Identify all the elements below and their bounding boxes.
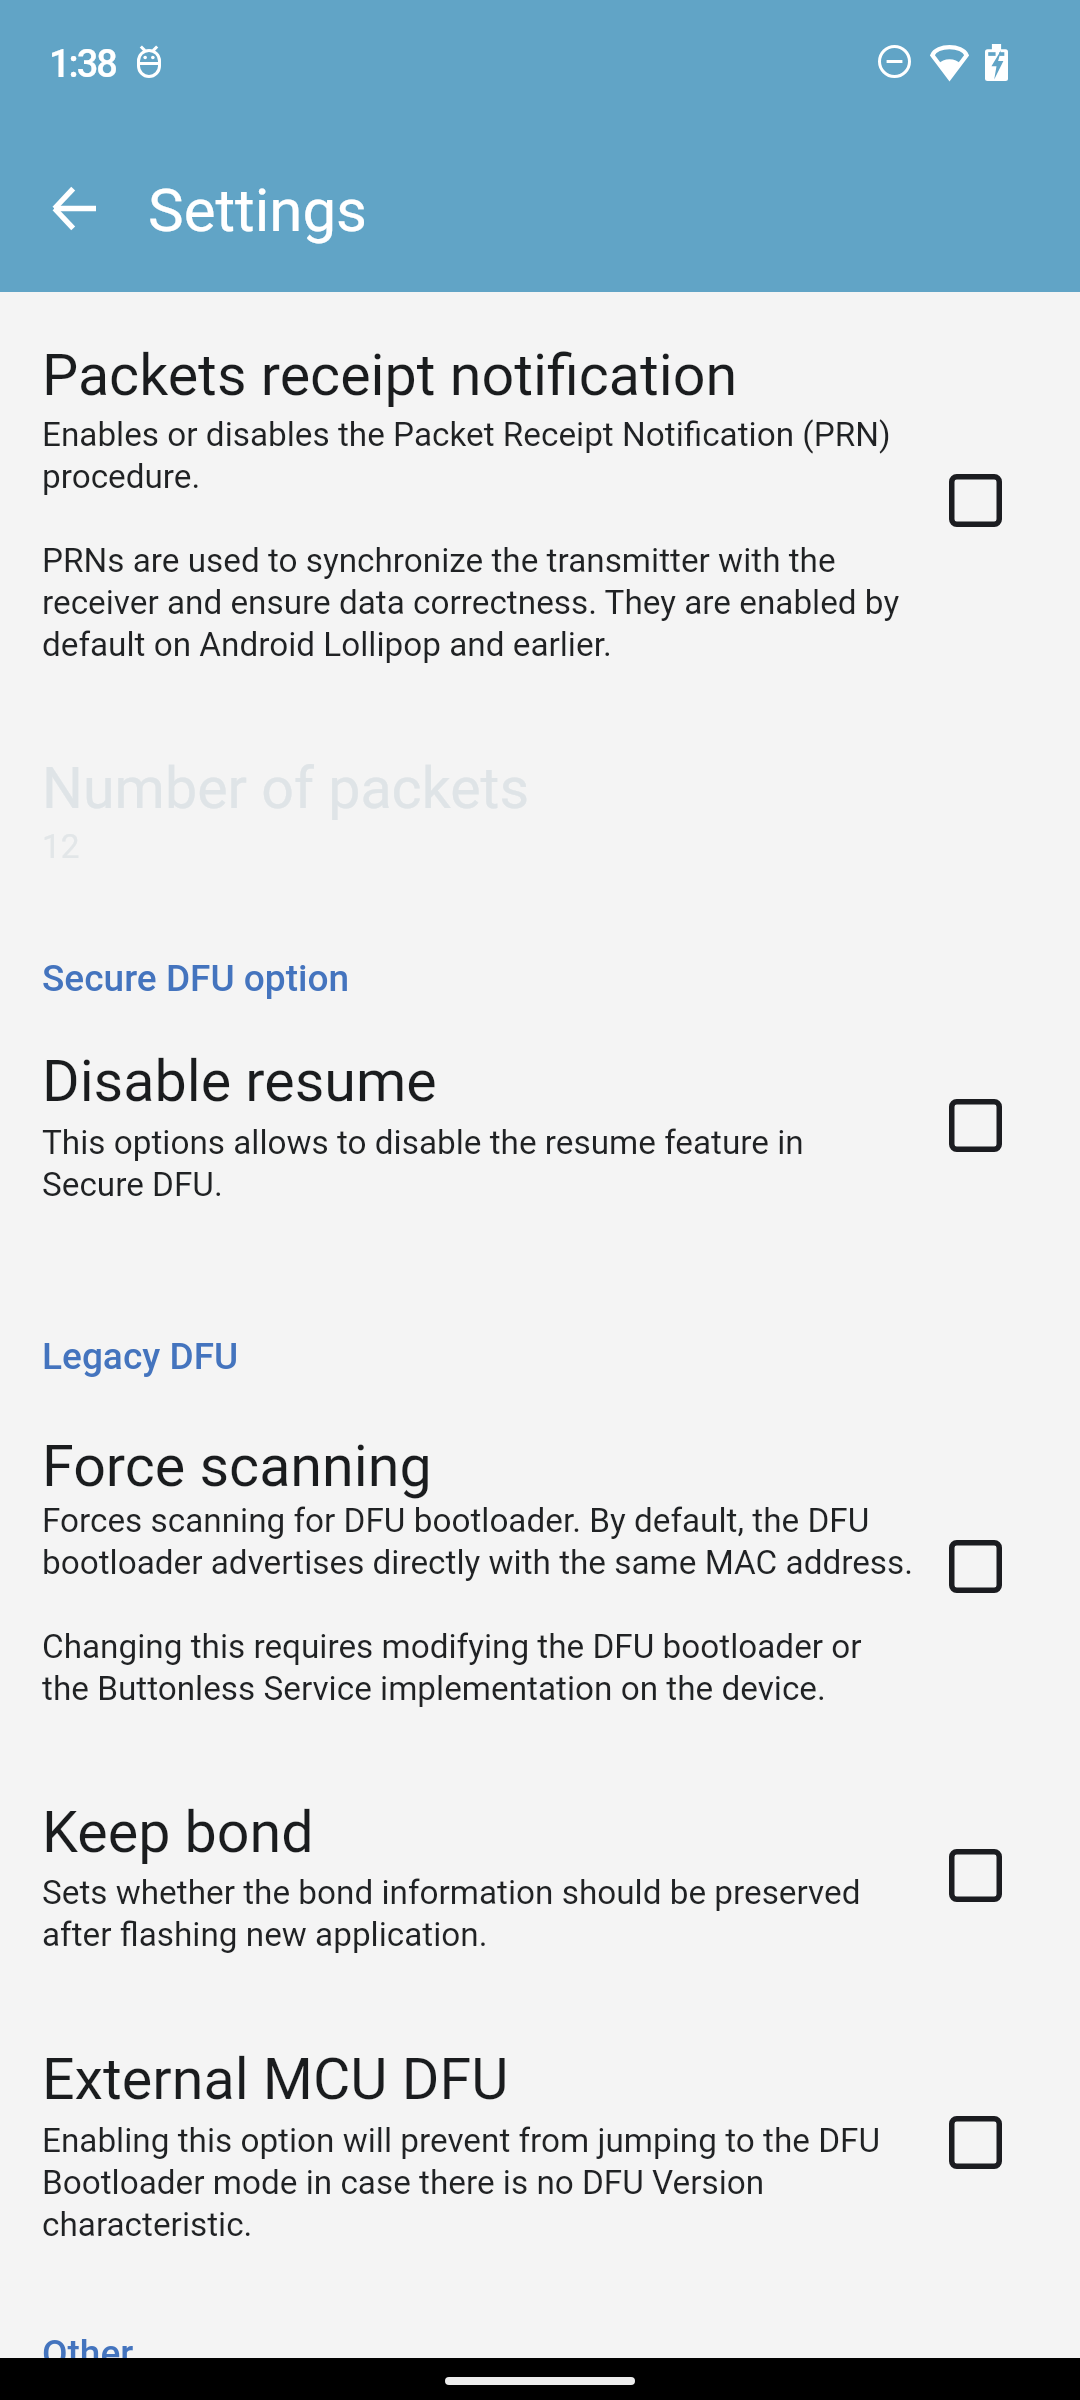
staticText: Sets whether the bond information should… bbox=[42, 1871, 942, 1955]
button[interactable]: External MCU DFU bbox=[0, 2040, 1080, 2270]
staticText: Keep bond bbox=[42, 1799, 942, 1866]
staticText: Enables or disables the Packet Receipt N… bbox=[42, 413, 942, 665]
staticText: Force scanning bbox=[42, 1433, 942, 1500]
staticText: Forces scanning for DFU bootloader. By d… bbox=[42, 1499, 942, 1709]
staticText: Enabling this option will prevent from j… bbox=[42, 2119, 942, 2245]
button[interactable]: Number of packets bbox=[0, 750, 1080, 890]
staticText: External MCU DFU bbox=[42, 2046, 942, 2113]
button[interactable]: Disable resume bbox=[0, 1040, 1080, 1230]
staticText: Settings bbox=[148, 176, 368, 246]
staticText: 1:38 bbox=[49, 41, 116, 86]
button[interactable]: Keep bond bbox=[0, 1790, 1080, 1980]
button[interactable]: Packets receipt notification bbox=[0, 310, 1080, 710]
button[interactable]: Home bbox=[445, 2377, 635, 2385]
staticText: Legacy DFU bbox=[42, 1336, 239, 1378]
staticText: This options allows to disable the resum… bbox=[42, 1121, 942, 1205]
staticText: Packets receipt notification bbox=[42, 342, 942, 409]
staticText: Disable resume bbox=[42, 1048, 942, 1115]
button[interactable]: Navigate back bbox=[32, 166, 116, 250]
staticText: Number of packets bbox=[42, 755, 942, 822]
staticText: Other bbox=[42, 2333, 134, 2375]
button[interactable]: Force scanning bbox=[0, 1425, 1080, 1725]
staticText: Secure DFU option bbox=[42, 958, 350, 1000]
